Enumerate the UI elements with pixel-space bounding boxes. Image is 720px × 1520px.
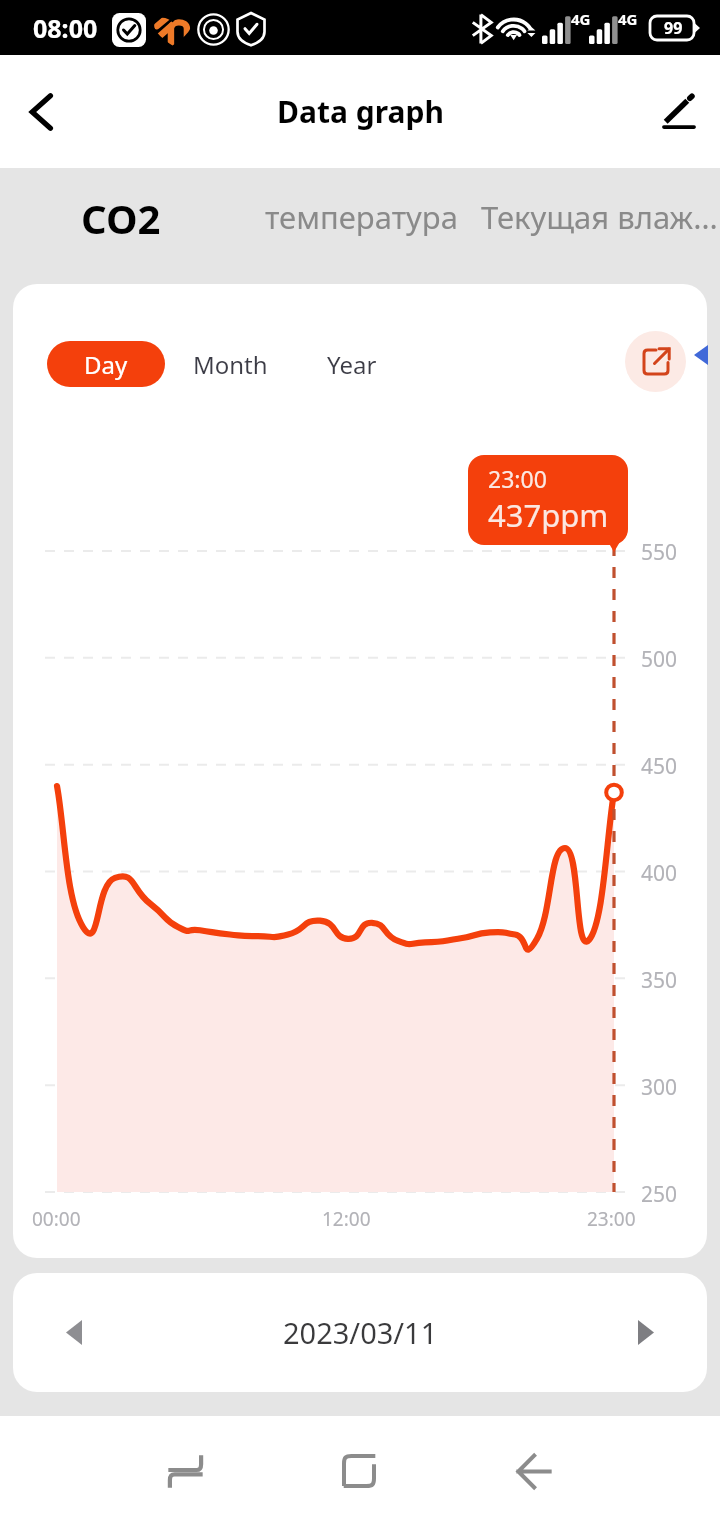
staticText: 450 (641, 752, 678, 781)
button[interactable]: Year (319, 341, 385, 387)
staticText: 500 (641, 645, 678, 674)
staticText: 250 (641, 1180, 678, 1209)
staticText: 99 (664, 17, 683, 39)
staticText: 437ppm (488, 494, 609, 536)
button[interactable]: Next day (613, 1300, 678, 1365)
button[interactable]: Edit (656, 89, 702, 135)
button[interactable]: Home (326, 1438, 392, 1504)
staticText: 2023/03/11 (283, 1313, 438, 1352)
staticText: CO2 (81, 191, 161, 245)
staticText: 23:00 (587, 1206, 636, 1232)
staticText: 4G (571, 9, 591, 29)
button[interactable]: Previous day (41, 1300, 106, 1365)
button[interactable]: температура (245, 173, 478, 279)
staticText: 23:00 (488, 463, 547, 494)
staticText: температура (265, 196, 458, 238)
staticText: 400 (641, 859, 678, 888)
button[interactable]: Текущая влаж… (461, 173, 720, 279)
button[interactable]: Month (185, 341, 276, 387)
button[interactable]: Share (625, 331, 686, 392)
staticText: 300 (641, 1073, 678, 1102)
button[interactable]: Back (18, 89, 64, 135)
staticText: 4G (618, 9, 638, 29)
button[interactable]: CO2 (61, 173, 181, 279)
staticText: 550 (641, 538, 678, 567)
staticText: 12:00 (322, 1206, 371, 1232)
staticText: 350 (641, 966, 678, 995)
button[interactable]: Recent apps (152, 1438, 218, 1504)
staticText: 00:00 (32, 1206, 81, 1232)
staticText: Текущая влаж… (481, 196, 718, 238)
staticText: Year (327, 348, 377, 381)
staticText: Data graph (277, 91, 444, 132)
button[interactable]: Back (500, 1438, 566, 1504)
staticText: Day (84, 348, 128, 381)
staticText: 08:00 (33, 11, 98, 45)
staticText: Month (193, 348, 268, 381)
button[interactable]: Day (47, 341, 165, 387)
